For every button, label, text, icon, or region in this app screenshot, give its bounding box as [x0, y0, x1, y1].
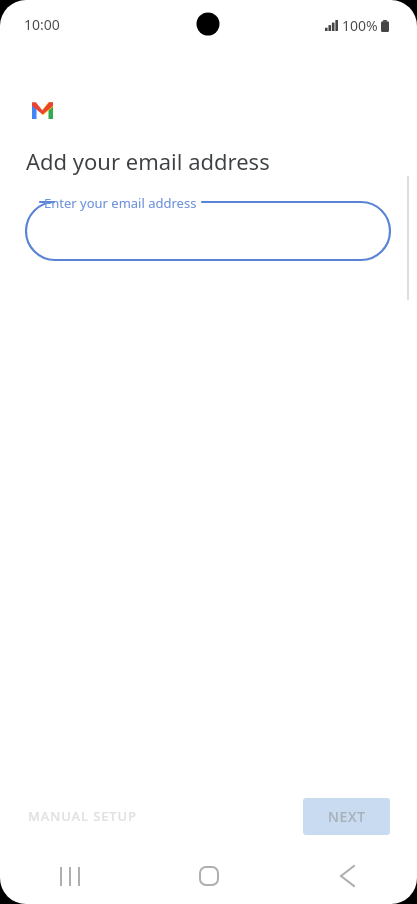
staticText: 100% — [342, 16, 378, 35]
button[interactable]: Recent apps — [0, 848, 139, 904]
staticText: Add your email address — [26, 146, 270, 176]
button[interactable]: NEXT — [303, 798, 390, 835]
button[interactable]: Home — [139, 848, 278, 904]
button[interactable]: Enter your email address — [26, 194, 390, 262]
staticText: NEXT — [328, 807, 366, 826]
button[interactable]: Back — [278, 848, 417, 904]
staticText: Enter your email address — [44, 194, 197, 212]
staticText: 10:00 — [24, 15, 60, 34]
button[interactable]: MANUAL SETUP — [16, 798, 149, 834]
staticText: MANUAL SETUP — [28, 807, 137, 825]
